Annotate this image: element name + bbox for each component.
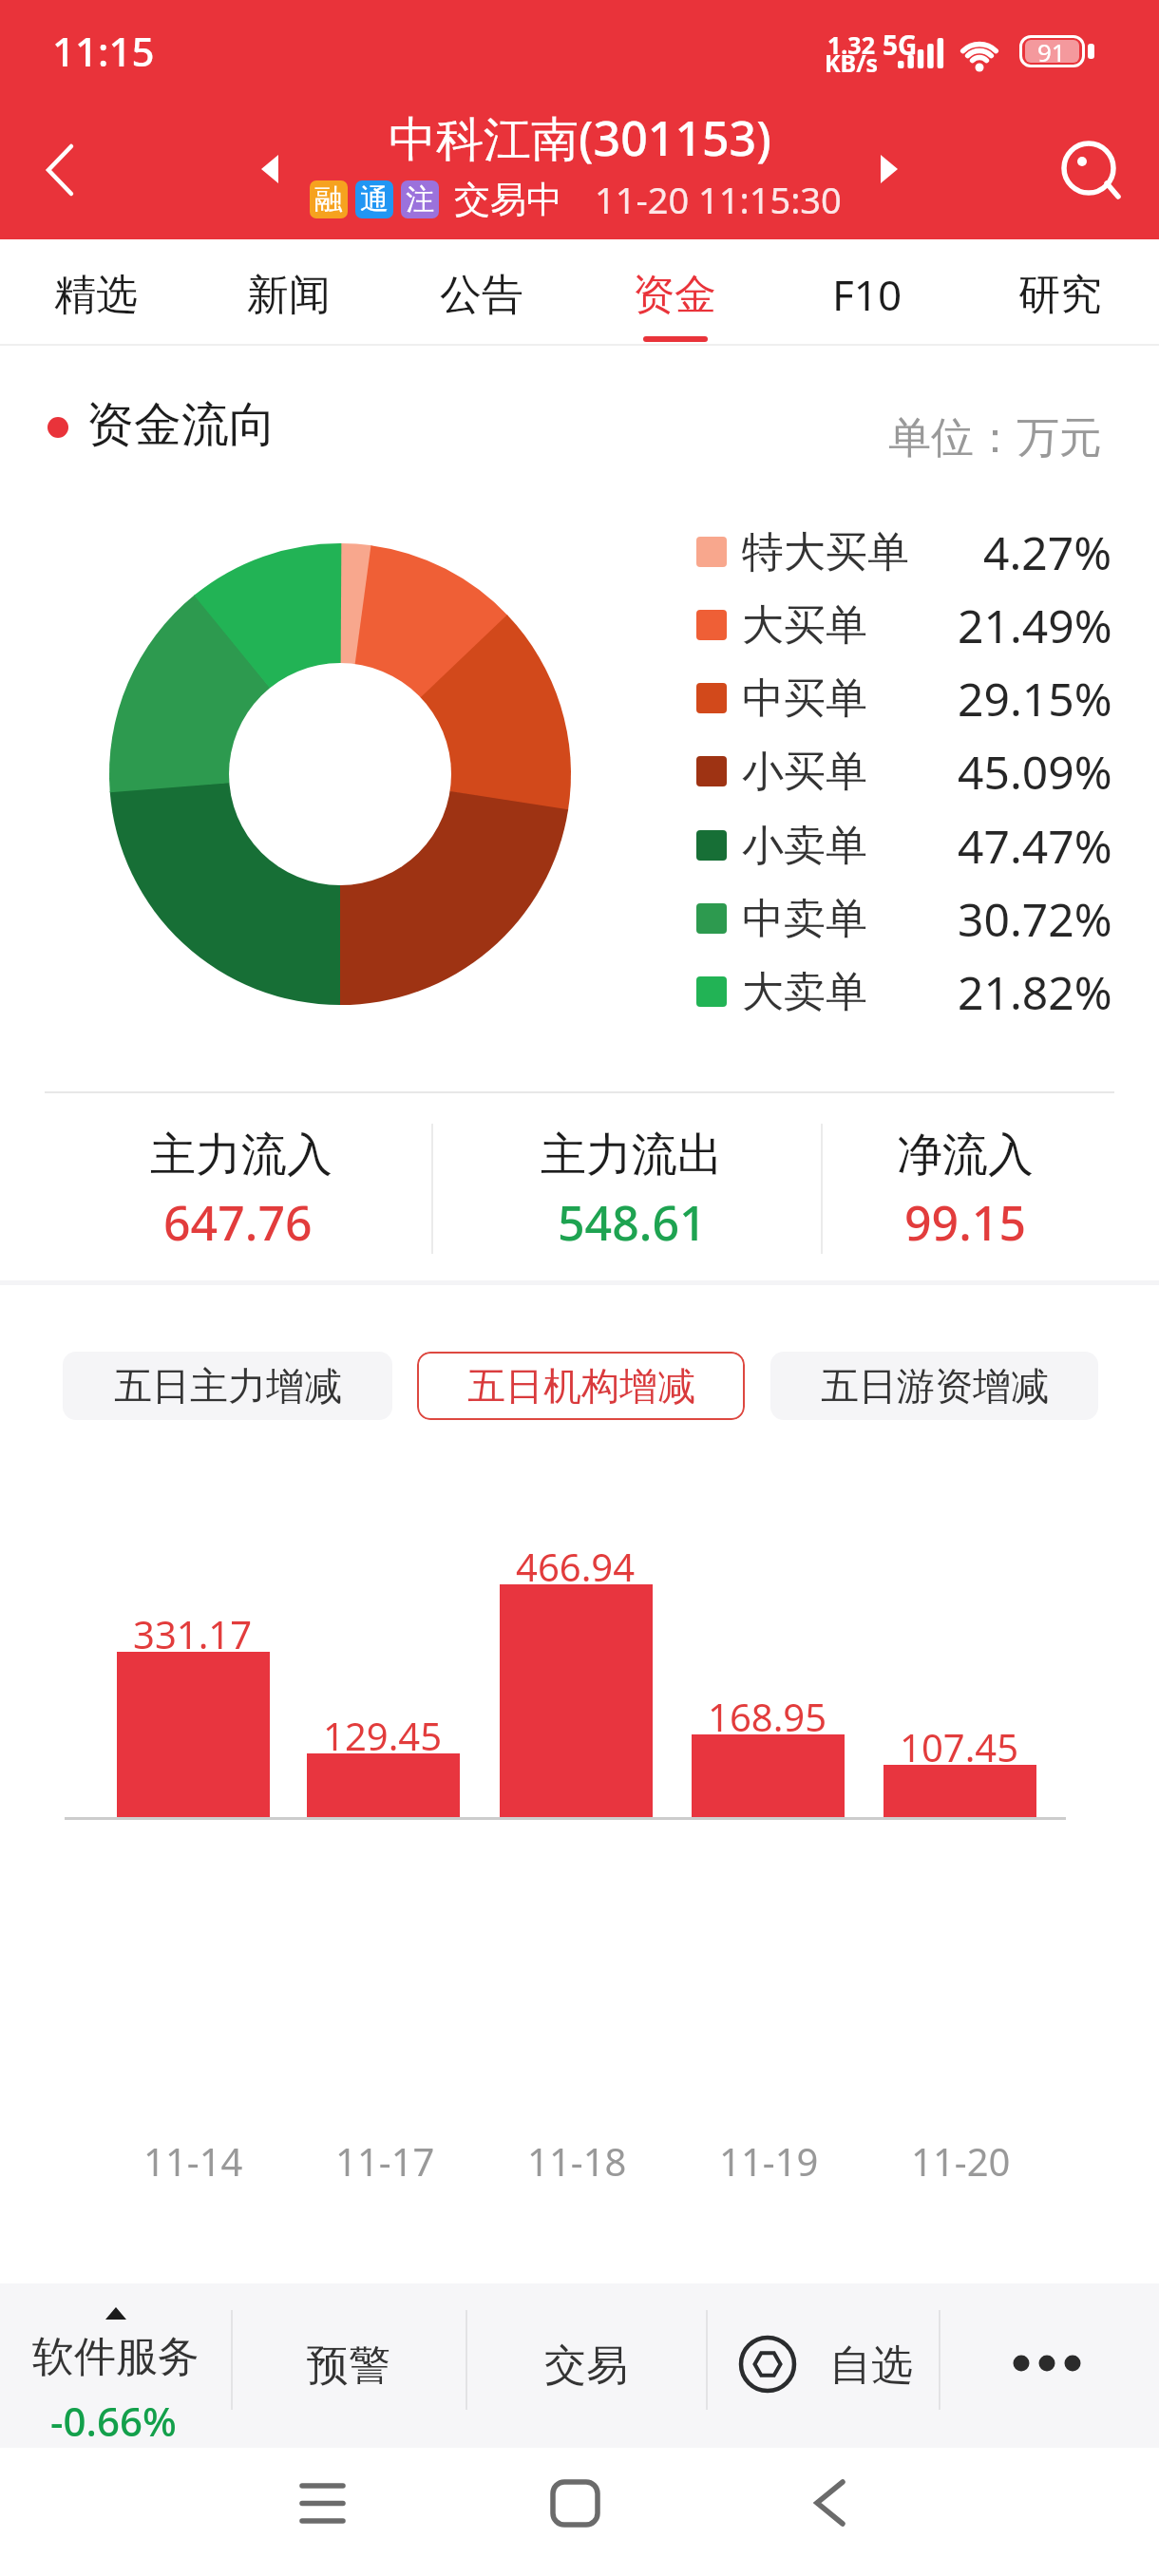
button[interactable]: 预警 bbox=[231, 2283, 465, 2448]
staticText: 11-20 11:15:30 bbox=[595, 175, 842, 224]
button[interactable]: 交易 bbox=[465, 2283, 706, 2448]
staticText: 大买单 bbox=[742, 599, 867, 652]
staticText: 主力流出 bbox=[541, 1127, 723, 1184]
staticText: 交易 bbox=[544, 2339, 628, 2392]
staticText: 资金 bbox=[633, 269, 716, 321]
button[interactable]: 资金 bbox=[589, 245, 760, 344]
button[interactable] bbox=[868, 147, 910, 191]
staticText: 11-20 bbox=[911, 2135, 1011, 2187]
staticText: 小卖单 bbox=[742, 820, 867, 872]
staticText: 168.95 bbox=[708, 1691, 827, 1742]
button[interactable]: 五日主力增减 bbox=[63, 1352, 392, 1420]
button[interactable]: F10 bbox=[782, 245, 953, 344]
button[interactable]: 新闻 bbox=[203, 245, 374, 344]
staticText: 11-14 bbox=[143, 2135, 243, 2187]
staticText: KB/s bbox=[825, 47, 879, 79]
button[interactable] bbox=[1051, 130, 1136, 210]
staticText: 单位：万元 bbox=[888, 411, 1102, 465]
staticText: 中科江南(301153) bbox=[389, 105, 771, 170]
staticText: 小买单 bbox=[742, 746, 867, 798]
staticText: 99.15 bbox=[904, 1190, 1026, 1255]
staticText: 大卖单 bbox=[742, 966, 867, 1018]
staticText: 21.49% bbox=[958, 595, 1112, 656]
staticText: 107.45 bbox=[900, 1721, 1019, 1772]
button[interactable] bbox=[0, 2283, 230, 2448]
staticText: 自选 bbox=[829, 2339, 913, 2392]
staticText: 资金流向 bbox=[86, 395, 276, 455]
staticText: 11-18 bbox=[527, 2135, 627, 2187]
staticText: 中买单 bbox=[742, 672, 867, 725]
staticText: 647.76 bbox=[163, 1190, 313, 1255]
staticText: 预警 bbox=[307, 2339, 390, 2392]
staticText: 47.47% bbox=[958, 815, 1112, 877]
staticText: 五日游资增减 bbox=[821, 1362, 1049, 1410]
button[interactable]: 自选 bbox=[706, 2283, 939, 2448]
staticText: 129.45 bbox=[323, 1710, 443, 1761]
staticText: 主力流入 bbox=[150, 1127, 332, 1184]
staticText: 中卖单 bbox=[742, 893, 867, 945]
staticText: 五日主力增减 bbox=[114, 1362, 342, 1410]
staticText: 研究 bbox=[1018, 269, 1102, 321]
button[interactable]: 五日游资增减 bbox=[770, 1352, 1098, 1420]
staticText: 新闻 bbox=[247, 269, 331, 321]
staticText: 通 bbox=[360, 181, 389, 218]
staticText: 五日机构增减 bbox=[467, 1362, 695, 1410]
button[interactable] bbox=[275, 2455, 370, 2552]
staticText: 11:15 bbox=[52, 24, 155, 78]
staticText: 11-19 bbox=[719, 2135, 819, 2187]
staticText: 5G bbox=[883, 27, 918, 63]
staticText: 注 bbox=[406, 181, 434, 218]
staticText: 91 bbox=[1037, 35, 1066, 68]
staticText: 21.82% bbox=[958, 961, 1112, 1023]
button[interactable] bbox=[249, 147, 291, 191]
staticText: 精选 bbox=[54, 269, 138, 321]
staticText: 30.72% bbox=[958, 888, 1112, 950]
button[interactable] bbox=[777, 2455, 872, 2552]
staticText: 交易中 bbox=[454, 177, 562, 222]
button[interactable] bbox=[28, 133, 95, 209]
button[interactable] bbox=[528, 2455, 623, 2552]
staticText: 29.15% bbox=[958, 668, 1112, 729]
staticText: 548.61 bbox=[558, 1190, 707, 1255]
staticText: 公告 bbox=[440, 269, 523, 321]
staticText: -0.66% bbox=[50, 2394, 177, 2448]
staticText: 331.17 bbox=[133, 1608, 253, 1659]
button[interactable]: 公告 bbox=[396, 245, 567, 344]
button[interactable]: 研究 bbox=[975, 245, 1146, 344]
staticText: 4.27% bbox=[983, 521, 1112, 583]
button[interactable] bbox=[939, 2283, 1159, 2448]
button[interactable]: 精选 bbox=[10, 245, 181, 344]
staticText: 11-17 bbox=[335, 2135, 435, 2187]
staticText: 1.32 bbox=[827, 28, 875, 61]
staticText: 融 bbox=[314, 181, 343, 218]
staticText: 软件服务 bbox=[32, 2331, 199, 2383]
button[interactable]: 五日机构增减 bbox=[417, 1352, 745, 1420]
staticText: 466.94 bbox=[516, 1541, 636, 1592]
staticText: 45.09% bbox=[958, 741, 1112, 803]
staticText: 净流入 bbox=[897, 1127, 1034, 1184]
staticText: F10 bbox=[832, 266, 902, 323]
staticText: 特大买单 bbox=[742, 526, 909, 578]
